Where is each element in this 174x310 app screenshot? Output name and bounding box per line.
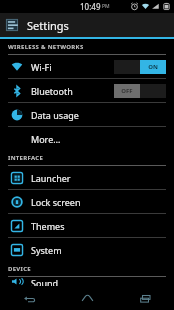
staticText: Sound [31,277,59,286]
staticText: System [31,244,62,256]
staticText: Wi-Fi [31,61,52,73]
staticText: Bluetooth [31,85,73,97]
button[interactable]: Data usage [0,103,174,126]
button[interactable]: More… [0,127,174,150]
button[interactable]: Home [58,286,116,310]
staticText: Lock screen [31,196,81,208]
staticText: 10:49 [80,1,101,12]
button[interactable]: Recents [116,286,174,310]
staticText: More… [31,133,61,145]
button[interactable]: Launcher [0,166,174,189]
staticText: DEVICE [8,265,31,273]
button[interactable]: Sound [0,277,174,286]
button[interactable]: Lock screen [0,190,174,213]
button[interactable]: Themes [0,214,174,237]
button[interactable]: Bluetooth [0,79,174,102]
staticText: Settings [27,18,69,33]
button[interactable]: Back [0,286,58,310]
staticText: Themes [31,220,65,232]
staticText: WIRELESS & NETWORKS [8,43,84,51]
button[interactable]: Toggle off [114,84,166,98]
staticText: ON [148,63,158,71]
staticText: Data usage [31,109,79,121]
button[interactable]: Wi-Fi [0,55,174,78]
staticText: OFF [121,87,133,95]
button[interactable]: System [0,238,174,261]
staticText: PM [102,3,110,10]
staticText: INTERFACE [8,154,44,162]
button[interactable]: Toggle on [114,60,166,74]
staticText: Launcher [31,172,71,184]
